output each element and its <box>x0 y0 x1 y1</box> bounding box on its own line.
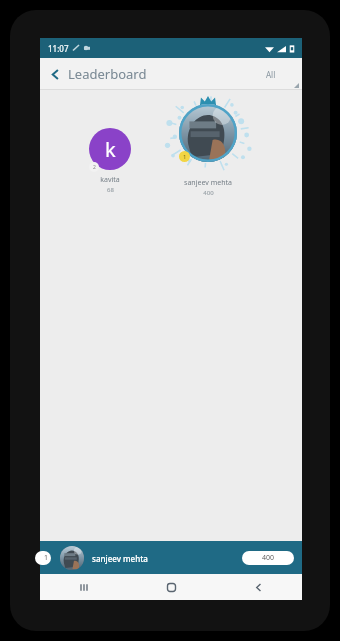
staticText: k <box>105 136 116 163</box>
staticText: 68 <box>107 186 114 194</box>
staticText: sanjeev mehta <box>184 178 232 188</box>
button[interactable]: Home <box>128 574 215 600</box>
staticText: 1 <box>183 153 187 161</box>
button[interactable]: k <box>88 128 132 194</box>
staticText: kavita <box>100 175 120 185</box>
button[interactable]: Back <box>215 574 302 600</box>
staticText: 2 <box>93 164 96 171</box>
staticText: sanjeev mehta <box>92 553 148 564</box>
staticText: All <box>266 69 276 80</box>
button[interactable]: Winner crown <box>162 92 254 197</box>
staticText: 11:07 <box>48 43 69 54</box>
staticText: 1 <box>44 553 49 563</box>
button[interactable]: Back <box>44 62 153 86</box>
staticText: Leaderboard <box>68 65 147 83</box>
button[interactable]: Recent apps <box>40 574 128 600</box>
button[interactable]: All <box>258 65 284 84</box>
other: Back <box>50 69 61 80</box>
other: Winner crown <box>200 95 216 106</box>
staticText: 400 <box>262 553 275 563</box>
button[interactable]: 1 <box>40 541 302 574</box>
staticText: 400 <box>203 189 214 197</box>
